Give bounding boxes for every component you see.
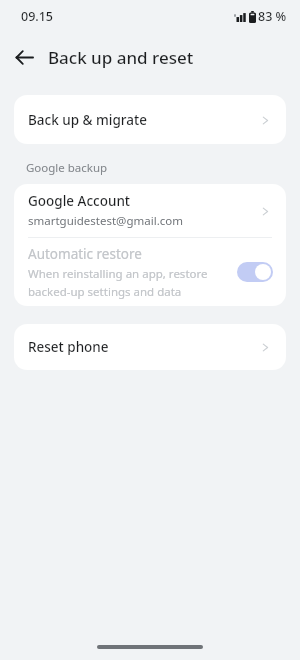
staticText: Reset phone xyxy=(28,338,255,356)
staticText: Google backup xyxy=(26,160,108,176)
button[interactable]: Back xyxy=(6,39,42,75)
staticText: Automatic restore xyxy=(28,245,142,263)
staticText: backed-up settings and data xyxy=(28,284,182,300)
staticText: smartguidestest@gmail.com xyxy=(28,213,183,229)
staticText: 09.15 xyxy=(21,8,54,25)
staticText: When reinstalling an app, restore xyxy=(28,266,208,282)
button[interactable]: Automatic restore toggle xyxy=(237,262,273,282)
button[interactable]: Reset phone xyxy=(14,324,286,370)
button[interactable]: Back up & migrate xyxy=(14,95,286,144)
staticText: Back up & migrate xyxy=(28,111,255,129)
staticText: 83 % xyxy=(258,8,287,25)
staticText: Back up and reset xyxy=(48,46,194,69)
button[interactable]: Automatic restore xyxy=(14,238,286,306)
staticText: Google Account xyxy=(28,192,131,210)
button[interactable]: Google Account xyxy=(14,184,286,237)
